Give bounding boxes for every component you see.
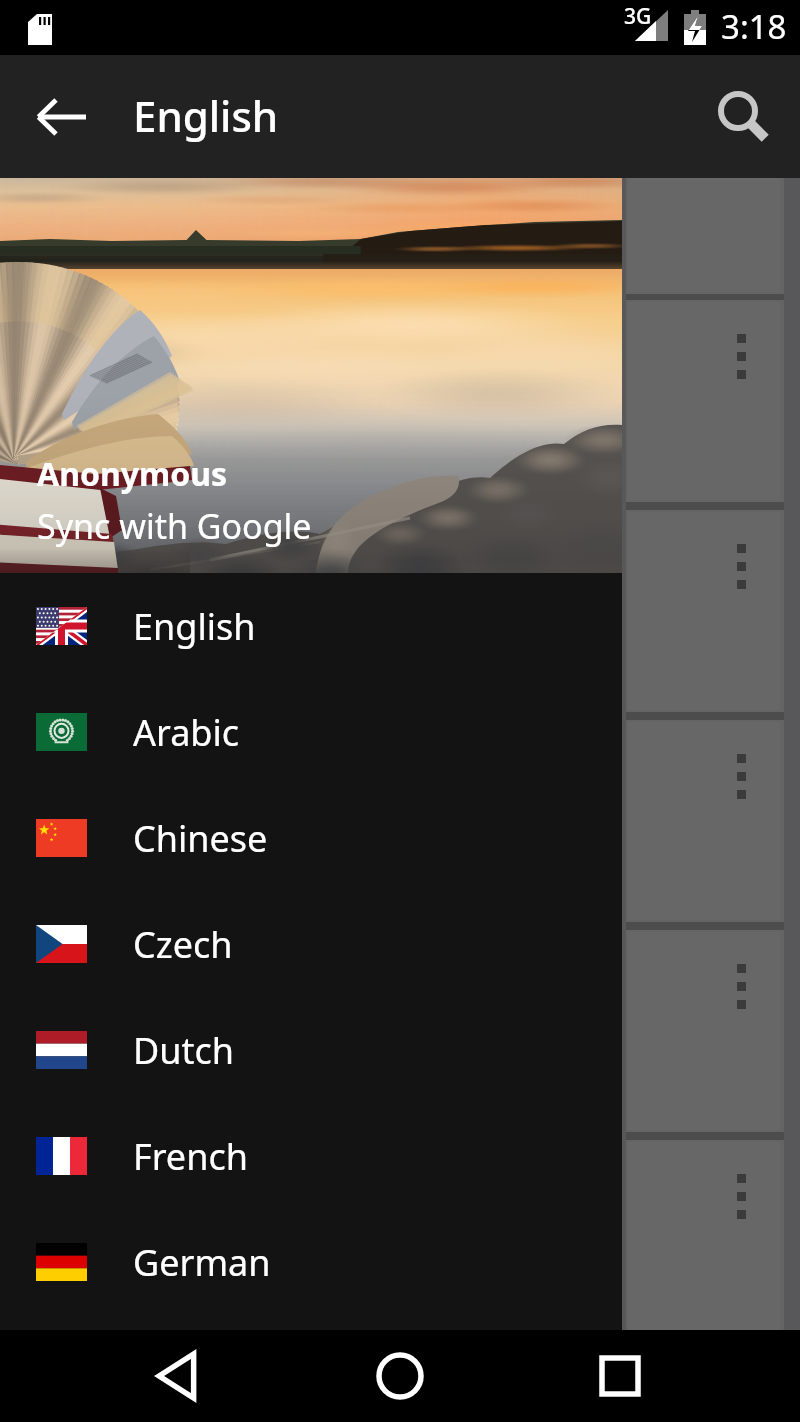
staticText: French xyxy=(133,1132,248,1181)
button[interactable]: English xyxy=(0,573,622,679)
staticText: Anonymous xyxy=(37,452,228,496)
button[interactable]: Back xyxy=(145,1341,215,1411)
staticText: Arabic xyxy=(133,708,240,757)
button[interactable]: Chinese xyxy=(0,785,622,891)
staticText: 3G xyxy=(624,2,652,31)
staticText: English xyxy=(133,602,256,651)
staticText: Sync with Google xyxy=(37,503,312,549)
button[interactable]: Recents xyxy=(585,1341,655,1411)
staticText: 3:18 xyxy=(721,4,787,49)
button[interactable]: Search xyxy=(708,82,778,152)
button[interactable]: Dutch xyxy=(0,997,622,1103)
staticText: German xyxy=(133,1238,271,1287)
button[interactable]: Czech xyxy=(0,891,622,997)
staticText: Dutch xyxy=(133,1026,235,1075)
button[interactable]: French xyxy=(0,1103,622,1209)
button[interactable]: Home xyxy=(365,1341,435,1411)
button[interactable]: Arabic xyxy=(0,679,622,785)
staticText: English xyxy=(133,87,279,144)
button[interactable]: Back xyxy=(31,86,93,148)
staticText: Chinese xyxy=(133,814,268,863)
staticText: Czech xyxy=(133,920,233,969)
button[interactable]: German xyxy=(0,1209,622,1315)
